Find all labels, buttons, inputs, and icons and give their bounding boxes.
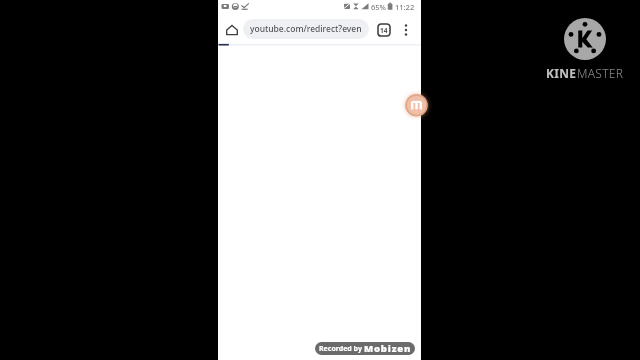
staticText: 11:22: [395, 2, 415, 12]
staticText: MASTER: [577, 65, 624, 81]
button[interactable]: youtube.com/redirect?even: [243, 19, 369, 39]
button[interactable]: Home: [224, 22, 240, 38]
button[interactable]: More options: [398, 22, 414, 38]
staticText: youtube.com/redirect?even: [250, 23, 362, 35]
button[interactable]: [218, 46, 421, 360]
staticText: 65%: [371, 2, 386, 12]
staticText: Recorded by: [319, 344, 362, 354]
staticText: Mobizen: [364, 342, 412, 355]
staticText: 14: [380, 26, 388, 35]
button[interactable]: Tabs: [376, 22, 392, 38]
staticText: KINE: [546, 65, 577, 81]
